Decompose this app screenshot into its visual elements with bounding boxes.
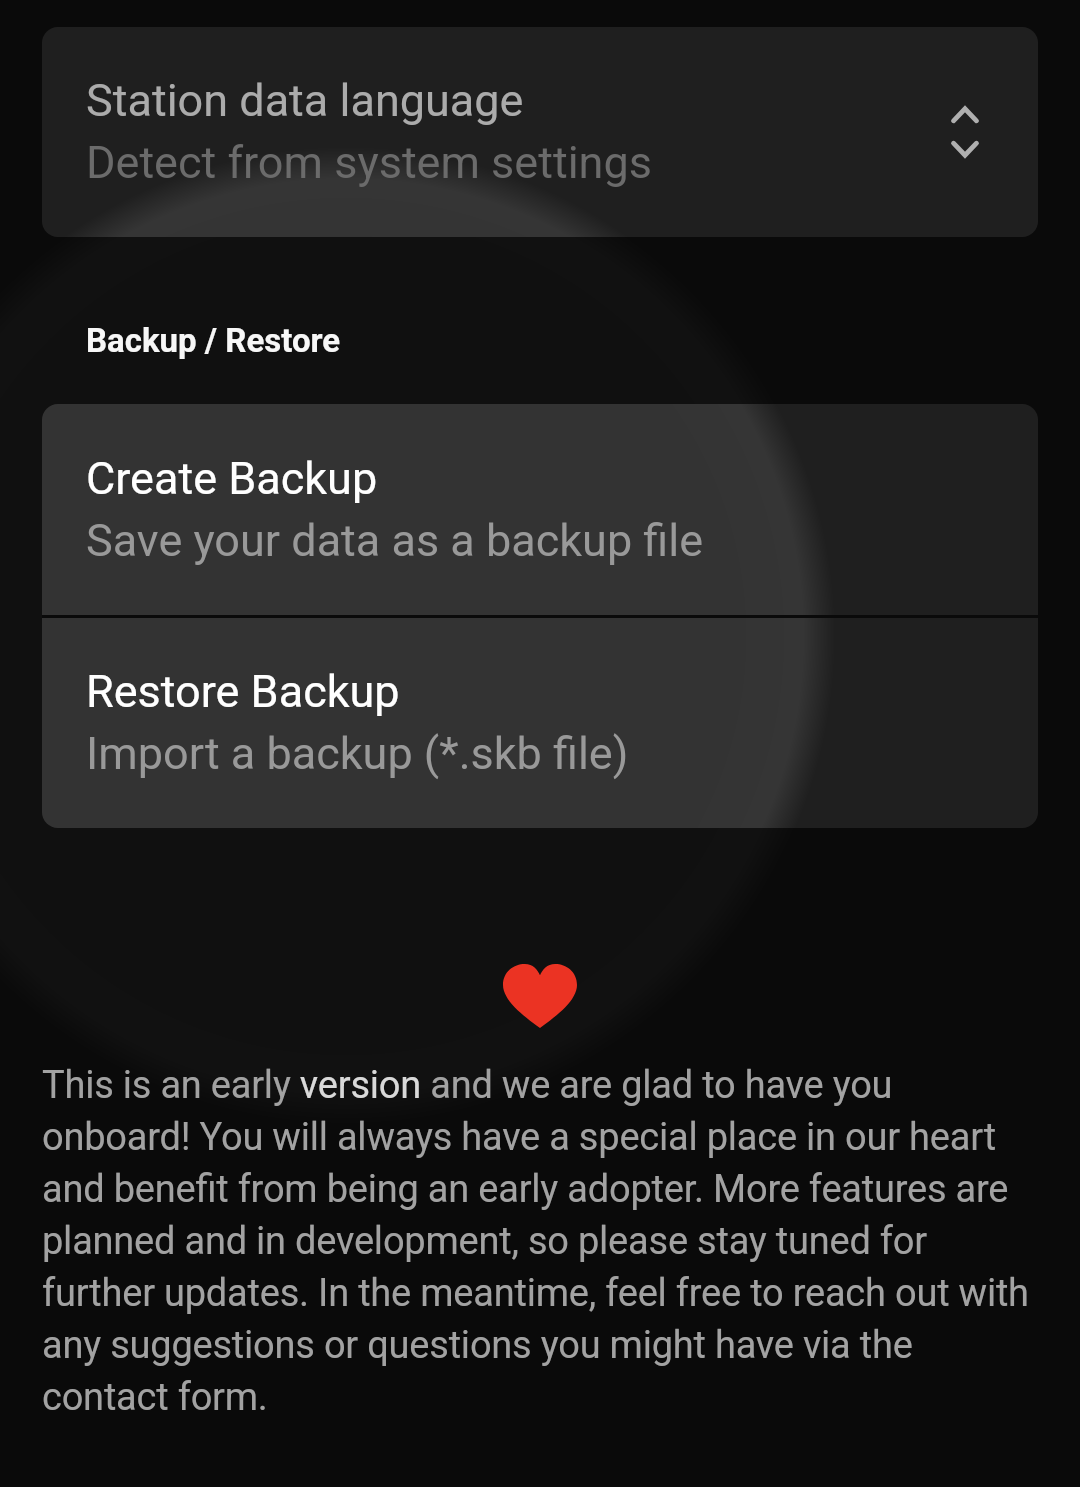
- staticText: Station data language: [86, 67, 524, 129]
- staticText: Create Backup: [86, 445, 378, 507]
- staticText: Backup / Restore: [86, 322, 341, 360]
- staticText: Restore Backup: [86, 658, 400, 720]
- staticText: This is an early version and we are glad…: [42, 1057, 1032, 1421]
- button[interactable]: Restore Backup: [42, 618, 1038, 828]
- staticText: Import a backup (*.skb file): [86, 720, 629, 782]
- other: Change station data language: [935, 92, 995, 172]
- staticText: Save your data as a backup file: [86, 507, 704, 569]
- button[interactable]: Station data language: [42, 27, 1038, 237]
- button[interactable]: Create Backup: [42, 404, 1038, 615]
- staticText: Detect from system settings: [86, 129, 652, 191]
